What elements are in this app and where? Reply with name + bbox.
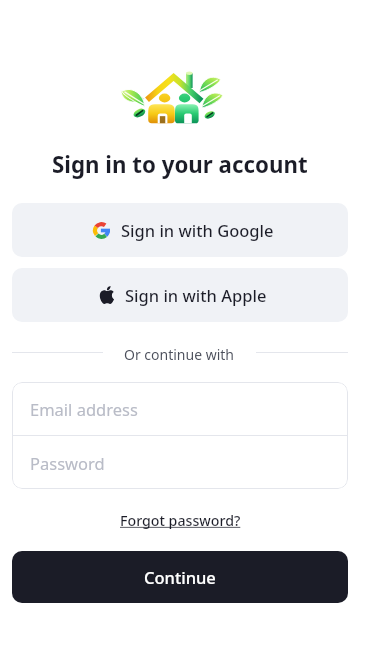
staticText: Sign in with Google <box>121 219 274 241</box>
staticText: Email address <box>30 398 138 420</box>
button[interactable]: Continue <box>12 551 348 603</box>
button[interactable]: Forgot password? <box>114 508 247 533</box>
other: Apple <box>99 286 114 304</box>
staticText: Forgot password? <box>120 511 241 530</box>
staticText: Sign in with Apple <box>125 284 267 306</box>
button[interactable]: Google <box>12 203 348 257</box>
other: App logo <box>119 71 224 124</box>
staticText: Continue <box>144 566 216 588</box>
button[interactable]: Apple <box>12 268 348 322</box>
staticText: Password <box>30 452 105 474</box>
staticText: Sign in to your account <box>52 149 308 179</box>
other: Google <box>93 222 110 239</box>
button[interactable]: Password <box>12 436 348 489</box>
button[interactable]: Email address <box>12 382 348 435</box>
staticText: Or continue with <box>124 345 235 360</box>
